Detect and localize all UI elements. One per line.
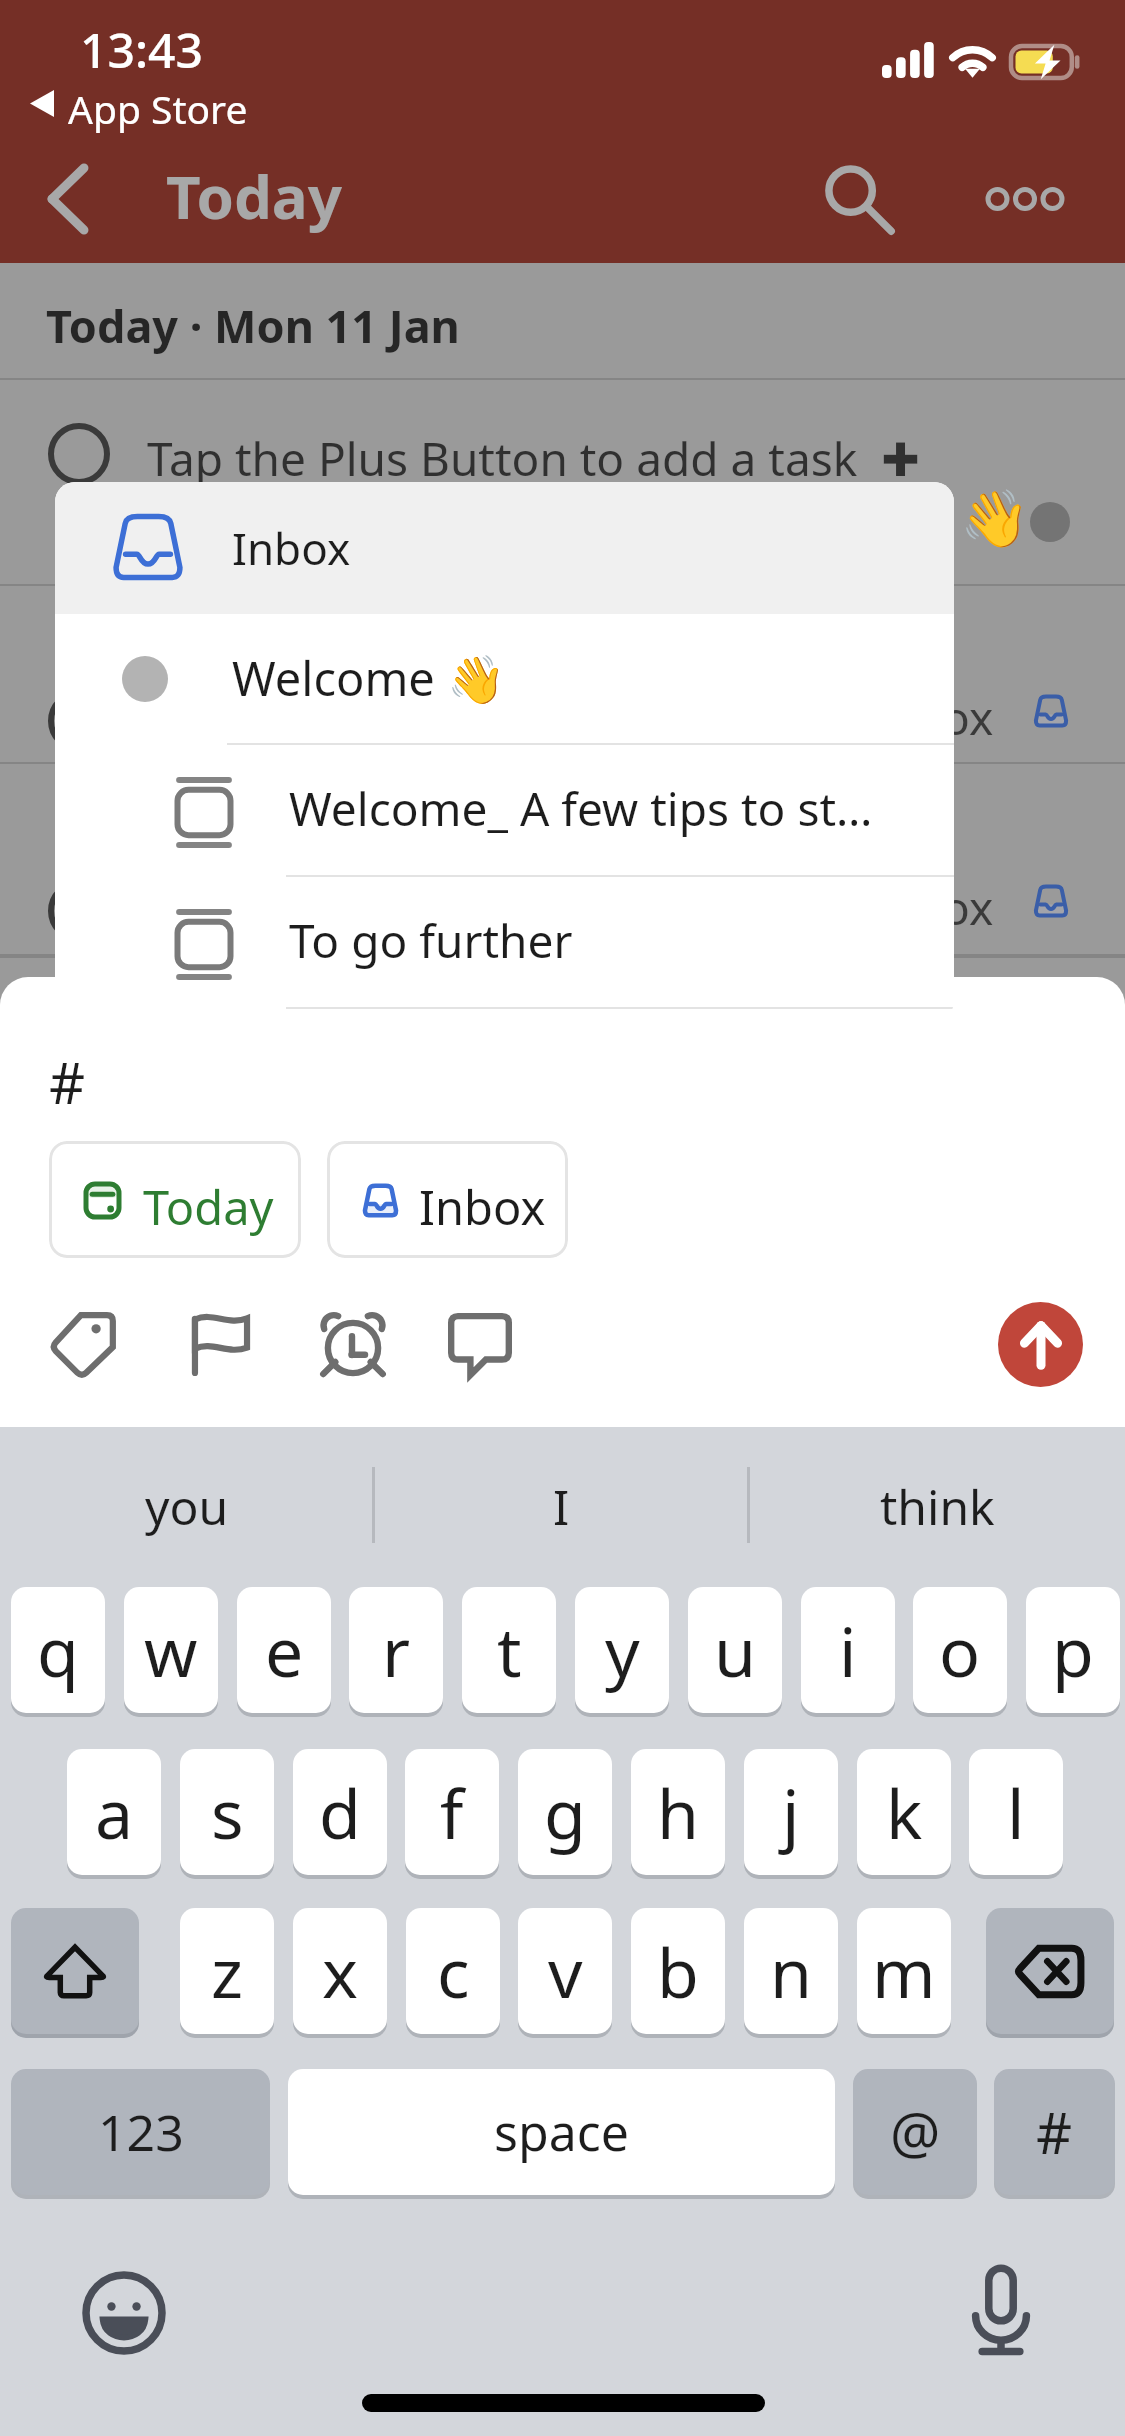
- staticText: x: [322, 1925, 358, 2018]
- staticText: w: [144, 1604, 198, 1697]
- button[interactable]: y: [575, 1587, 669, 1713]
- staticText: #: [1036, 2094, 1073, 2170]
- staticText: Inbox: [419, 1175, 546, 1239]
- staticText: 👋: [960, 486, 1030, 552]
- button[interactable]: p: [1026, 1587, 1120, 1713]
- button[interactable]: Today: [49, 1141, 301, 1258]
- staticText: Welcome_ A few tips to st…: [289, 777, 873, 840]
- staticText: b: [657, 1925, 699, 2018]
- button[interactable]: Back: [12, 140, 124, 258]
- button[interactable]: Inbox: [55, 482, 954, 614]
- staticText: you: [145, 1474, 229, 1539]
- staticText: k: [886, 1766, 923, 1859]
- button[interactable]: Add task: [998, 1302, 1083, 1387]
- staticText: s: [211, 1766, 244, 1859]
- staticText: j: [782, 1766, 800, 1859]
- staticText: g: [544, 1766, 586, 1859]
- staticText: Today: [143, 1175, 274, 1239]
- button[interactable]: you: [0, 1443, 373, 1569]
- button[interactable]: w: [124, 1587, 218, 1713]
- button[interactable]: Welcome_ A few tips to st…: [55, 745, 954, 879]
- button[interactable]: 123: [11, 2069, 270, 2195]
- button[interactable]: Search: [800, 140, 918, 258]
- staticText: 13:43: [80, 17, 203, 82]
- staticText: t: [497, 1604, 522, 1697]
- staticText: @: [890, 2094, 941, 2170]
- button[interactable]: Priority: [174, 1298, 268, 1392]
- staticText: 123: [98, 2098, 184, 2166]
- staticText: q: [37, 1604, 79, 1697]
- staticText: App Store: [68, 82, 248, 135]
- staticText: u: [714, 1604, 757, 1697]
- button[interactable]: think: [750, 1443, 1125, 1569]
- button[interactable]: Backspace: [986, 1908, 1114, 2034]
- staticText: l: [1007, 1766, 1025, 1859]
- button[interactable]: f: [405, 1749, 499, 1875]
- button[interactable]: d: [293, 1749, 387, 1875]
- button[interactable]: Go to Inbox: [0, 764, 1125, 954]
- button[interactable]: space: [288, 2069, 835, 2195]
- button[interactable]: Go to Inbox: [0, 586, 1125, 762]
- staticText: v: [548, 1925, 583, 2018]
- button[interactable]: a: [67, 1749, 161, 1875]
- button[interactable]: I: [375, 1443, 748, 1569]
- staticText: z: [211, 1925, 243, 2018]
- staticText: #: [49, 1044, 86, 1120]
- staticText: i: [839, 1604, 857, 1697]
- button[interactable]: c: [406, 1908, 500, 2034]
- staticText: Welcome 👋: [232, 646, 506, 710]
- button[interactable]: o: [913, 1587, 1007, 1713]
- button[interactable]: j: [744, 1749, 838, 1875]
- staticText: I: [553, 1474, 570, 1539]
- staticText: Today: [166, 155, 343, 237]
- staticText: To go further: [289, 909, 573, 972]
- staticText: n: [770, 1925, 813, 2018]
- button[interactable]: Welcome 👋: [55, 614, 954, 745]
- button[interactable]: More options: [960, 140, 1090, 258]
- button[interactable]: To go further: [55, 877, 954, 1011]
- button[interactable]: m: [857, 1908, 951, 2034]
- button[interactable]: Shift: [11, 1908, 139, 2034]
- button[interactable]: Reminder: [306, 1297, 400, 1391]
- staticText: think: [880, 1474, 995, 1539]
- staticText: h: [657, 1766, 700, 1859]
- button[interactable]: Comment: [433, 1298, 527, 1392]
- staticText: Tap the Plus Button to add a task ✚: [147, 427, 920, 490]
- button[interactable]: s: [180, 1749, 274, 1875]
- button[interactable]: #: [994, 2069, 1115, 2195]
- button[interactable]: g: [518, 1749, 612, 1875]
- button[interactable]: h: [631, 1749, 725, 1875]
- button[interactable]: b: [631, 1908, 725, 2034]
- button[interactable]: Emoji keyboard: [76, 2265, 172, 2361]
- staticText: a: [95, 1766, 134, 1859]
- button[interactable]: r: [349, 1587, 443, 1713]
- staticText: space: [494, 2098, 629, 2166]
- button[interactable]: t: [462, 1587, 556, 1713]
- button[interactable]: Dictation: [953, 2262, 1049, 2358]
- staticText: d: [319, 1766, 361, 1859]
- button[interactable]: v: [518, 1908, 612, 2034]
- button[interactable]: x: [293, 1908, 387, 2034]
- staticText: f: [440, 1766, 464, 1859]
- staticText: Go to Inbox: [740, 876, 994, 939]
- button[interactable]: Labels: [37, 1297, 131, 1391]
- button[interactable]: z: [180, 1908, 274, 2034]
- button[interactable]: Inbox: [327, 1141, 568, 1258]
- staticText: p: [1052, 1604, 1094, 1697]
- button[interactable]: @: [853, 2069, 977, 2195]
- button[interactable]: n: [744, 1908, 838, 2034]
- button[interactable]: q: [11, 1587, 105, 1713]
- button[interactable]: l: [969, 1749, 1063, 1875]
- button[interactable]: i: [801, 1587, 895, 1713]
- staticText: e: [265, 1604, 304, 1697]
- staticText: y: [605, 1604, 640, 1697]
- staticText: m: [872, 1925, 936, 2018]
- staticText: Today · Mon 11 Jan: [46, 295, 460, 356]
- button[interactable]: u: [688, 1587, 782, 1713]
- staticText: Inbox: [232, 518, 351, 578]
- staticText: r: [382, 1604, 411, 1697]
- button[interactable]: k: [857, 1749, 951, 1875]
- button[interactable]: e: [237, 1587, 331, 1713]
- staticText: c: [437, 1925, 470, 2018]
- staticText: o: [939, 1604, 981, 1697]
